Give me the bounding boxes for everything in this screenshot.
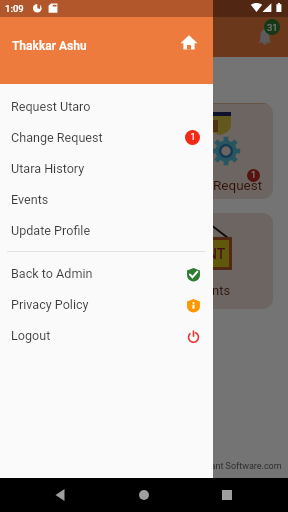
staticText: 1:09: [5, 3, 24, 14]
button[interactable]: Logout: [0, 320, 213, 351]
button[interactable]: Events: [0, 184, 213, 215]
staticText: 1: [190, 132, 196, 143]
button[interactable]: Request Utaro: [0, 91, 213, 122]
staticText: nts: [212, 283, 231, 298]
staticText: Back to Admin: [11, 266, 93, 281]
staticText: Update Profile: [11, 223, 91, 238]
button[interactable]: Back to Admin: [0, 258, 213, 289]
staticText: Logout: [11, 328, 51, 343]
button[interactable]: Change Request: [0, 122, 213, 153]
staticText: NT: [207, 246, 226, 262]
button[interactable]: Request: [40, 103, 273, 199]
staticText: Utara History: [11, 161, 85, 176]
staticText: Request: [213, 177, 263, 193]
button[interactable]: Privacy Policy: [0, 289, 213, 320]
staticText: Privacy Policy: [11, 297, 89, 312]
button[interactable]: NT: [40, 213, 273, 309]
button[interactable]: Utara History: [0, 153, 213, 184]
staticText: 31: [267, 22, 278, 33]
staticText: 1: [251, 170, 257, 181]
button[interactable]: Update Profile: [0, 215, 213, 246]
button[interactable]: Home: [179, 33, 199, 53]
staticText: Thakkar Ashu: [12, 39, 87, 53]
staticText: Events: [11, 192, 49, 207]
staticText: Request Utaro: [11, 99, 91, 114]
staticText: Change Request: [11, 130, 103, 145]
button[interactable]: Notifications: [0, 17, 288, 57]
staticText: Powered by Radiant Software.com: [144, 461, 282, 472]
